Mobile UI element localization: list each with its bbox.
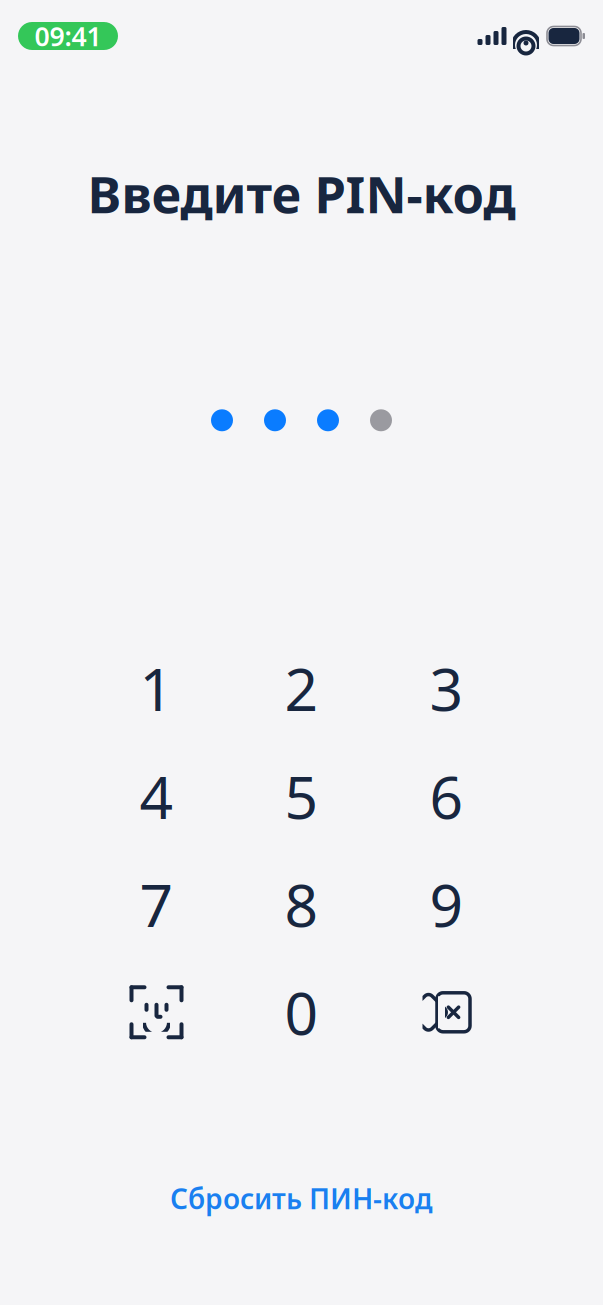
staticText: 3 [429, 649, 463, 727]
staticText: 0 [284, 973, 318, 1051]
staticText: 6 [429, 757, 463, 835]
staticText: 4 [139, 757, 173, 835]
button[interactable]: Delete [392, 969, 500, 1055]
button[interactable]: 3 [392, 645, 500, 731]
button[interactable]: 7 [102, 861, 210, 947]
staticText: 8 [284, 865, 318, 943]
staticText: Введите PIN-код [87, 160, 515, 227]
button[interactable]: Сбросить ПИН-код [150, 1170, 453, 1227]
button[interactable]: 2 [247, 645, 355, 731]
button[interactable]: 9 [392, 861, 500, 947]
staticText: Сбросить ПИН-код [170, 1180, 433, 1217]
button[interactable]: 5 [247, 753, 355, 839]
button[interactable]: 4 [102, 753, 210, 839]
staticText: 7 [139, 865, 173, 943]
staticText: 2 [284, 649, 318, 727]
staticText: 09:41 [34, 18, 101, 54]
button[interactable]: 1 [102, 645, 210, 731]
staticText: 1 [139, 649, 173, 727]
button[interactable]: 0 [247, 969, 355, 1055]
staticText: 5 [284, 757, 318, 835]
button[interactable]: 6 [392, 753, 500, 839]
staticText: 9 [429, 865, 463, 943]
button[interactable]: 8 [247, 861, 355, 947]
button[interactable]: Face ID [102, 969, 210, 1055]
